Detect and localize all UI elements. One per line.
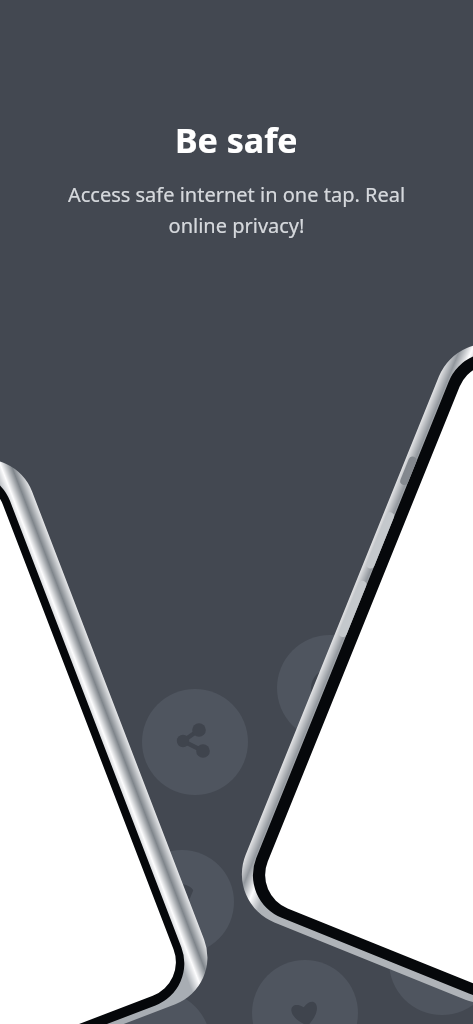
button[interactable]: [0, 0, 473, 1024]
